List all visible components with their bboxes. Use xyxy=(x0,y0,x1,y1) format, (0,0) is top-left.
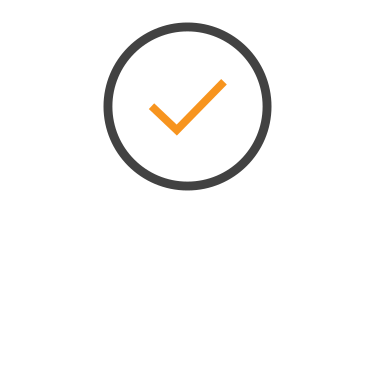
button[interactable]: Completed xyxy=(103,22,271,190)
